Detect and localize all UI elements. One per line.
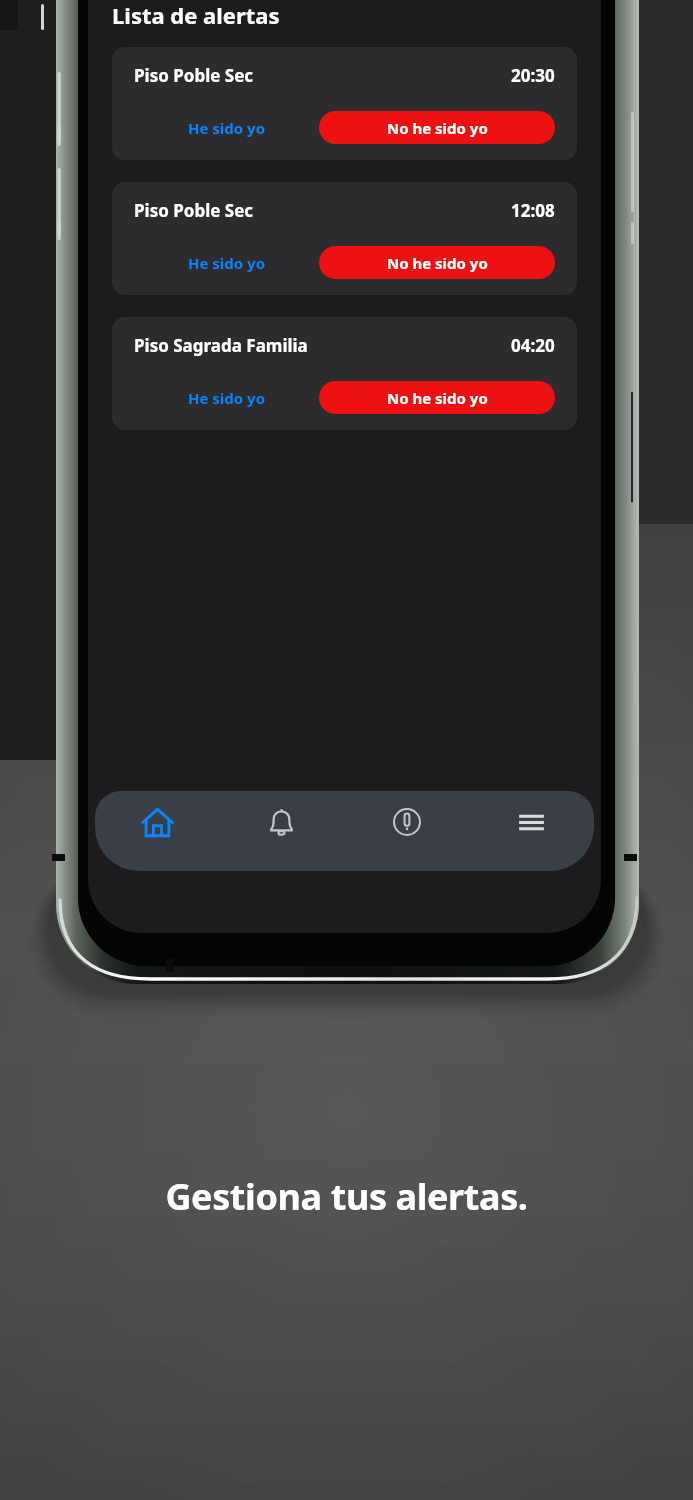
button[interactable]: He sido yo <box>134 381 319 414</box>
staticText: 12:08 <box>511 199 555 222</box>
button[interactable]: Piso Poble Sec <box>112 182 577 295</box>
staticText: He sido yo <box>188 388 266 408</box>
staticText: Piso Sagrada Familia <box>134 334 308 357</box>
staticText: 04:20 <box>511 334 555 357</box>
button[interactable]: He sido yo <box>134 111 319 144</box>
staticText: Piso Poble Sec <box>134 64 254 87</box>
button[interactable]: No he sido yo <box>319 111 555 144</box>
button[interactable]: Piso Poble Sec <box>112 47 577 160</box>
staticText: Lista de alertas <box>112 0 280 30</box>
button[interactable]: No he sido yo <box>319 381 555 414</box>
staticText: He sido yo <box>188 118 266 138</box>
staticText: No he sido yo <box>387 253 488 273</box>
button[interactable]: Piso Sagrada Familia <box>112 317 577 430</box>
staticText: He sido yo <box>188 253 266 273</box>
button[interactable]: No he sido yo <box>319 246 555 279</box>
staticText: 20:30 <box>511 64 555 87</box>
button[interactable]: Menu <box>469 791 594 871</box>
button[interactable]: Notifications <box>219 791 344 871</box>
staticText: No he sido yo <box>387 388 488 408</box>
button[interactable]: Home <box>95 791 219 871</box>
button[interactable]: Alerts <box>344 791 469 871</box>
staticText: No he sido yo <box>387 118 488 138</box>
button[interactable]: He sido yo <box>134 246 319 279</box>
staticText: Piso Poble Sec <box>134 199 254 222</box>
staticText: Gestiona tus alertas. <box>0 1172 693 1221</box>
